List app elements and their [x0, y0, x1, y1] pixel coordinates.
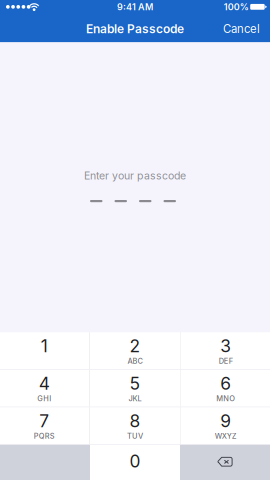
staticText: 0 [129, 451, 140, 472]
button[interactable]: 7 [0, 407, 89, 444]
button[interactable]: 8 [90, 407, 180, 444]
staticText: ABC [127, 356, 142, 365]
button[interactable]: 0 [90, 445, 180, 480]
staticText: 6 [220, 373, 231, 394]
staticText: 9:41 AM [117, 1, 153, 12]
staticText: JKL [128, 394, 141, 403]
staticText: 100% [224, 1, 249, 12]
staticText: Enter your passcode [84, 169, 186, 182]
staticText: 1 [41, 335, 48, 356]
button[interactable]: Cancel [211, 16, 270, 42]
staticText: 5 [129, 373, 140, 394]
staticText: 4 [39, 373, 50, 394]
staticText: Cancel [223, 22, 260, 36]
staticText: PQRS [34, 431, 55, 440]
button[interactable]: 6 [181, 370, 270, 407]
staticText: GHI [37, 394, 51, 403]
button[interactable]: 9 [181, 407, 270, 444]
button[interactable]: 1 [0, 332, 89, 369]
staticText: 7 [39, 410, 49, 431]
button[interactable]: 3 [181, 332, 270, 369]
staticText: 2 [129, 335, 140, 356]
staticText: WXYZ [215, 431, 237, 440]
staticText: DEF [219, 356, 233, 365]
button[interactable]: 2 [90, 332, 180, 369]
button[interactable]: Delete [180, 445, 270, 480]
staticText: 9 [220, 410, 231, 431]
staticText: 3 [220, 335, 231, 356]
button[interactable]: 4 [0, 370, 89, 407]
staticText: TUV [127, 431, 143, 440]
staticText: Enable Passcode [86, 22, 184, 36]
staticText: 8 [129, 410, 140, 431]
button[interactable]: 5 [90, 370, 180, 407]
staticText: MNO [216, 394, 235, 403]
